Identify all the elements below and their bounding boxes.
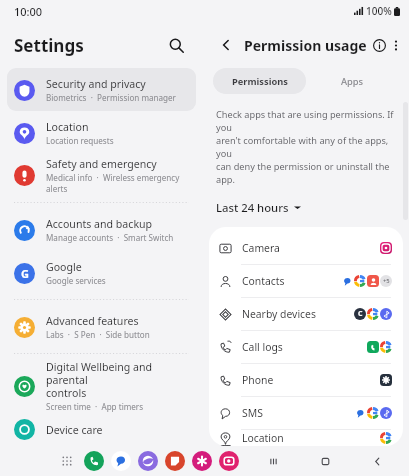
button[interactable]: pinkapp (192, 451, 212, 471)
staticText: Safety and emergency (46, 157, 157, 171)
button[interactable]: Recent apps (263, 451, 283, 471)
staticText: Phone (242, 373, 274, 387)
button[interactable]: Back (214, 33, 238, 57)
button[interactable]: Information (367, 33, 391, 57)
button[interactable]: All apps (58, 452, 76, 470)
staticText: C (358, 309, 363, 319)
staticText: Location requests (46, 135, 114, 146)
staticText: Location (242, 431, 284, 445)
button[interactable]: Security and privacy (7, 68, 196, 111)
button[interactable]: Home (315, 451, 335, 471)
button[interactable]: Device care (7, 413, 196, 446)
button[interactable]: Phone (209, 364, 403, 396)
staticText: Google (46, 260, 82, 274)
button[interactable]: purpleapp (138, 451, 158, 471)
button[interactable]: Nearby devices (209, 298, 403, 330)
button[interactable]: Location (209, 430, 403, 446)
staticText: SMS (242, 406, 263, 420)
staticText: 100% (366, 4, 392, 18)
button[interactable]: Back (367, 451, 387, 471)
button[interactable]: Safety and emergency (7, 154, 196, 197)
button[interactable]: Last 24 hours (215, 198, 302, 217)
staticText: Check apps that are using permissions. I… (216, 108, 396, 186)
staticText: Labs · S Pen · Side button (46, 329, 150, 340)
staticText: Security and privacy (46, 77, 146, 91)
staticText: +5 (383, 277, 390, 285)
staticText: Medical info · Wireless emergency alerts (46, 172, 188, 194)
button[interactable]: Apps (306, 68, 399, 94)
button[interactable]: Camera (209, 232, 403, 264)
staticText: 10:00 (14, 4, 43, 19)
button[interactable]: Search (161, 30, 191, 60)
staticText: Apps (341, 75, 364, 88)
staticText: Digital Wellbeing and parental controls (46, 360, 188, 400)
staticText: Call logs (242, 340, 283, 354)
button[interactable]: SMS (209, 397, 403, 429)
button[interactable]: camapp (219, 451, 239, 471)
staticText: Location (46, 120, 89, 134)
button[interactable]: Accounts and backup (7, 208, 196, 251)
button[interactable]: Location (7, 111, 196, 154)
staticText: Biometrics · Permission manager (46, 92, 176, 103)
button[interactable]: phoneapp (84, 451, 104, 471)
staticText: G (21, 266, 29, 281)
staticText: Permissions (232, 75, 288, 88)
staticText: Last 24 hours (216, 200, 289, 215)
button[interactable]: Advanced features (7, 305, 196, 348)
staticText: Camera (242, 241, 280, 255)
staticText: Google services (46, 275, 106, 286)
button[interactable]: Call logs (209, 331, 403, 363)
staticText: Manage accounts · Smart Switch (46, 232, 174, 243)
staticText: Permission usage (244, 36, 367, 55)
staticText: Advanced features (46, 314, 139, 328)
button[interactable]: More options (391, 33, 401, 57)
staticText: Device care (46, 423, 103, 437)
button[interactable]: Digital Wellbeing and parental controls (7, 359, 196, 413)
staticText: Contacts (242, 274, 285, 288)
button[interactable]: redapp (165, 451, 185, 471)
staticText: Nearby devices (242, 307, 316, 321)
staticText: Settings (14, 34, 84, 57)
button[interactable]: Permissions (213, 68, 306, 94)
button[interactable]: G (7, 251, 196, 294)
button[interactable]: Contacts (209, 265, 403, 297)
button[interactable]: msgapp (111, 451, 131, 471)
staticText: Screen time · App timers (46, 401, 144, 412)
staticText: Accounts and backup (46, 217, 153, 231)
